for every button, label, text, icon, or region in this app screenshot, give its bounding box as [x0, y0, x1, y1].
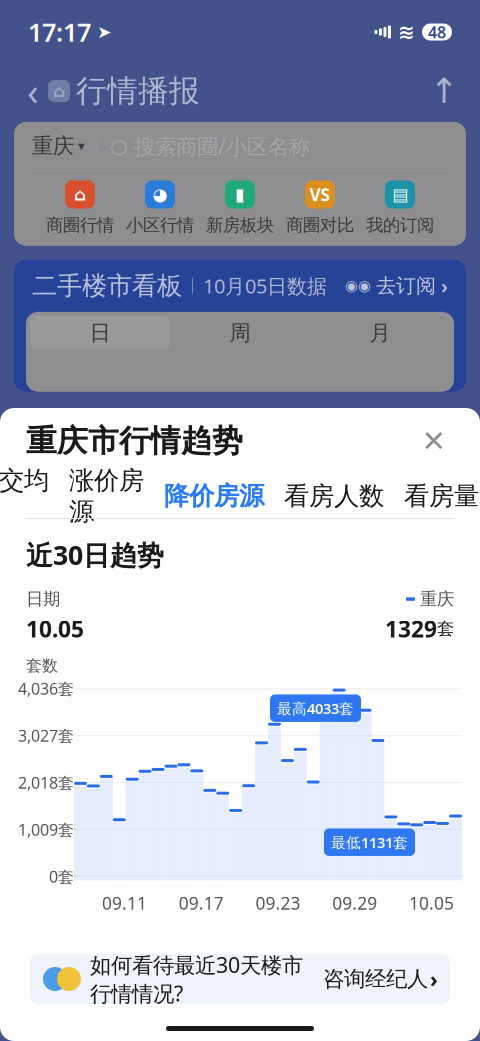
button[interactable]: ○	[110, 132, 448, 160]
staticText: 成交均价	[0, 465, 49, 527]
button[interactable]: Back	[18, 71, 48, 111]
staticText: ▮	[235, 185, 245, 204]
button[interactable]: 看房量	[404, 480, 479, 511]
button[interactable]: ⌂	[40, 180, 120, 236]
staticText: ›	[430, 965, 438, 993]
staticText: ⌂	[74, 185, 86, 204]
staticText: ◕	[152, 185, 167, 204]
button[interactable]: 涨价房源	[69, 465, 144, 527]
staticText: 周	[229, 320, 250, 346]
staticText: 10.05	[26, 614, 84, 644]
staticText: 看房人数	[284, 480, 384, 511]
button[interactable]: VS	[280, 180, 360, 236]
staticText: 10.05	[409, 891, 454, 914]
staticText: 重庆市行情趋势	[26, 422, 243, 460]
button[interactable]: 重庆	[32, 133, 85, 159]
staticText: 48	[428, 21, 446, 43]
staticText: ◉◉	[345, 277, 371, 294]
staticText: 套数	[26, 656, 58, 675]
staticText: 0套	[49, 866, 74, 887]
staticText: 看房量	[404, 480, 479, 511]
staticText: 日期	[26, 588, 60, 610]
button[interactable]: 日	[30, 316, 170, 350]
staticText: 最高4033套	[277, 698, 354, 718]
staticText: VS	[309, 183, 330, 206]
staticText: 我的订阅	[366, 214, 434, 236]
staticText: 09.11	[102, 891, 147, 914]
staticText: 月	[369, 320, 390, 346]
staticText: ›	[441, 272, 448, 299]
staticText: 咨询经纪人	[323, 966, 428, 992]
staticText: 套	[437, 618, 454, 639]
staticText: 重庆	[32, 133, 74, 159]
staticText: 小区行情	[126, 214, 194, 236]
staticText: 商圈对比	[286, 214, 354, 236]
button[interactable]: 周	[170, 316, 310, 350]
staticText: 1329	[385, 614, 437, 644]
button[interactable]: ▮	[200, 180, 280, 236]
staticText: 1,009套	[18, 819, 74, 840]
staticText: 17:17	[28, 15, 91, 49]
staticText: 09.23	[255, 891, 300, 914]
button[interactable]: 如何看待最近30天楼市行情情况?	[0, 954, 480, 1004]
button[interactable]: ▤	[360, 180, 440, 236]
staticText: 搜索商圈/小区名称	[134, 132, 310, 160]
staticText: 新房板块	[206, 214, 274, 236]
staticText: 最低1131套	[331, 832, 408, 852]
staticText: ✕	[421, 424, 446, 458]
staticText: 09.17	[179, 891, 224, 914]
staticText: 涨价房源	[69, 465, 144, 527]
button[interactable]: ◕	[120, 180, 200, 236]
button[interactable]: 成交均价	[0, 465, 49, 527]
staticText: 商圈行情	[46, 214, 114, 236]
staticText: 2,018套	[18, 772, 74, 793]
button[interactable]: 降价房源	[164, 480, 264, 511]
staticText: ➤	[97, 22, 112, 42]
staticText: 4,036套	[18, 678, 74, 699]
staticText: 日	[89, 320, 110, 346]
button[interactable]: Share	[426, 71, 462, 111]
staticText: ○	[110, 135, 127, 157]
staticText: 3,027套	[18, 725, 74, 746]
staticText: 去订阅	[376, 273, 436, 298]
staticText: 10月05日数据	[203, 272, 327, 299]
staticText: ≋	[398, 21, 415, 43]
staticText: 降价房源	[164, 480, 264, 511]
staticText: 行情播报	[76, 72, 200, 110]
staticText: 二手楼市看板	[32, 270, 182, 301]
staticText: 如何看待最近30天楼市行情情况?	[90, 951, 303, 1007]
button[interactable]: Close	[414, 421, 454, 461]
staticText: 重庆	[420, 588, 454, 610]
button[interactable]: ◉◉	[345, 272, 448, 299]
staticText: ‹	[27, 66, 39, 116]
staticText: 09.29	[332, 891, 377, 914]
button[interactable]: 月	[310, 316, 450, 350]
staticText: ↑	[429, 71, 458, 111]
staticText: ▾	[78, 138, 85, 153]
button[interactable]: 看房人数	[284, 480, 384, 511]
staticText: ▤	[392, 185, 408, 204]
staticText: 近30日趋势	[26, 537, 164, 572]
staticText: ⌂	[53, 81, 65, 101]
